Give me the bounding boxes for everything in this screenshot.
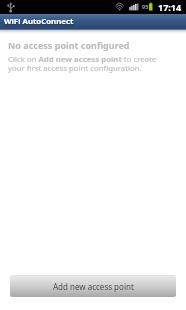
staticText: 95 — [142, 3, 149, 10]
staticText: Add new access point — [53, 281, 134, 292]
staticText: WiFi AutoConnect — [4, 16, 74, 27]
staticText: No access point configured — [8, 39, 130, 51]
staticText: 17:14 — [158, 1, 182, 13]
staticText: Click on Add new access point to create … — [8, 54, 161, 73]
button[interactable]: Add new access point — [10, 275, 176, 297]
